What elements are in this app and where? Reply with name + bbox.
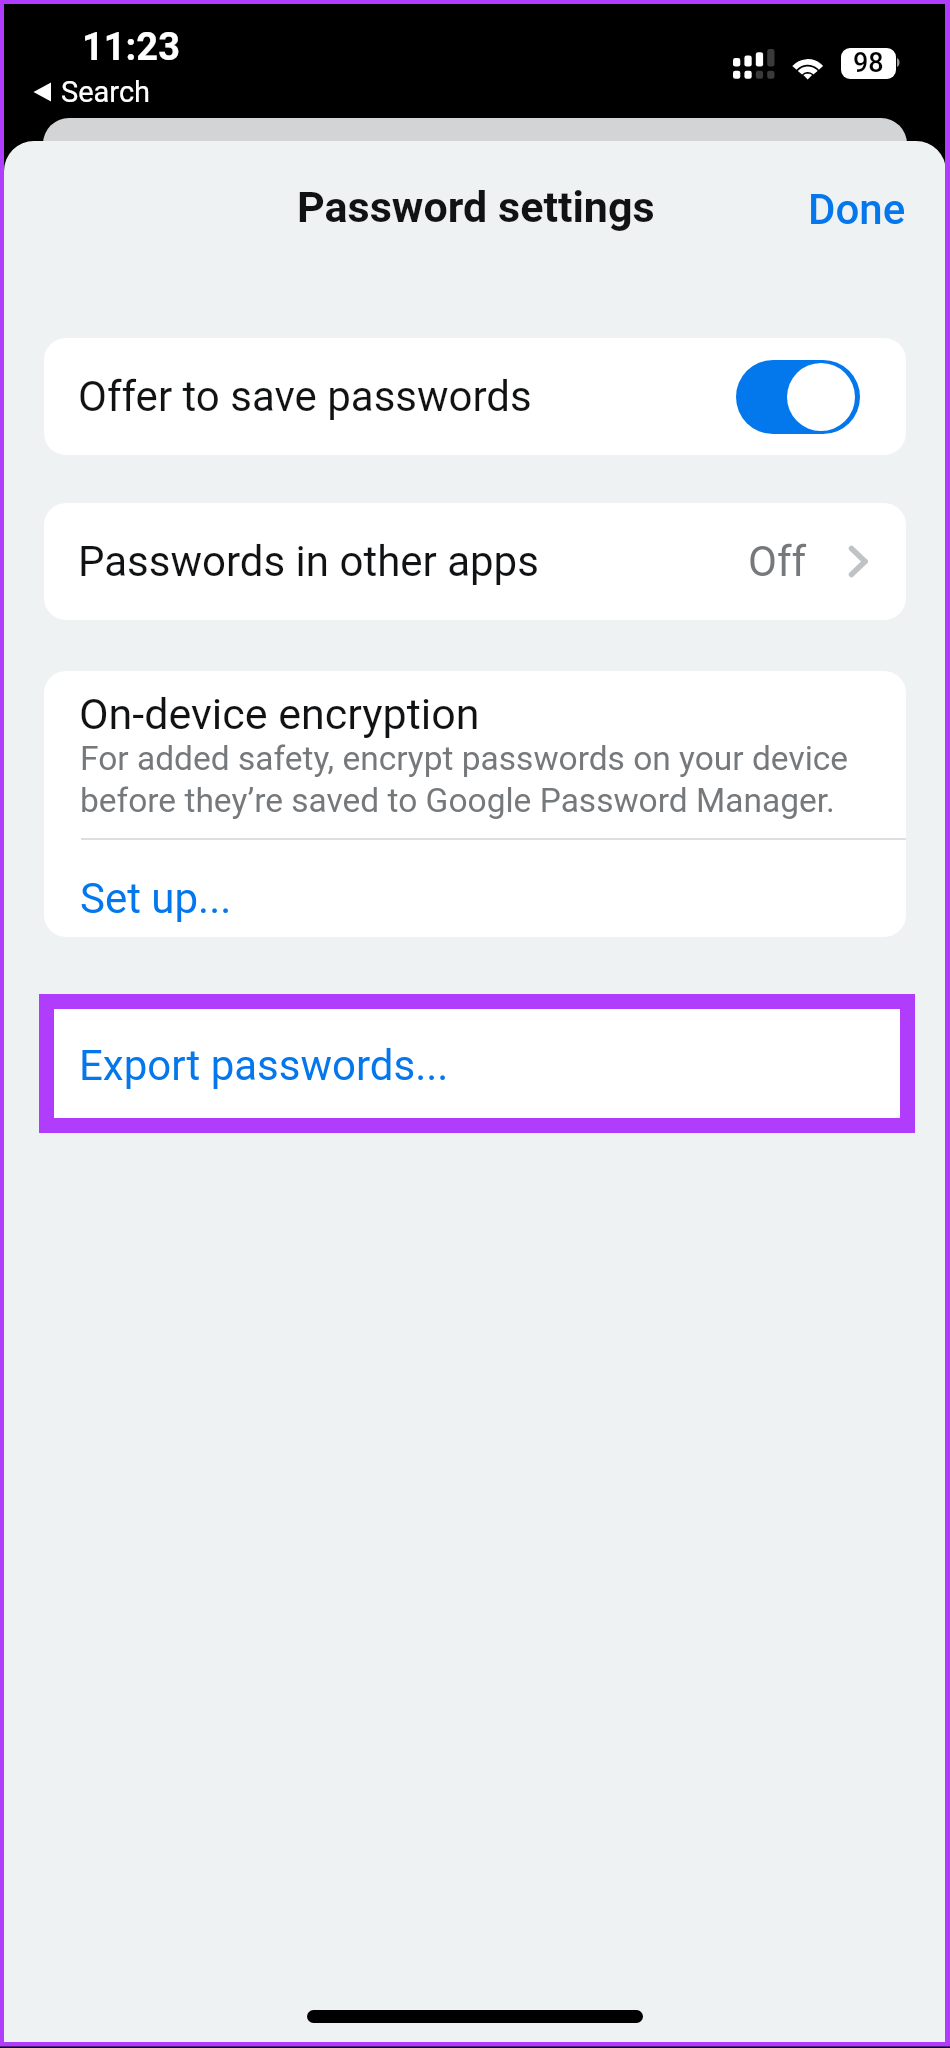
staticText: Password settings [297,182,655,232]
staticText: On-device encryption [79,689,480,739]
button[interactable]: Offer to save passwords [44,338,906,455]
button[interactable]: Set up... [44,840,906,937]
staticText: 98 [853,48,884,78]
staticText: Passwords in other apps [78,537,539,586]
staticText: Export passwords... [79,1041,449,1090]
button[interactable]: Search [33,75,159,109]
staticText: Offer to save passwords [78,372,532,421]
staticText: Off [748,537,807,586]
staticText: Search [61,75,151,109]
staticText: Done [808,185,906,234]
button[interactable]: Done [786,165,928,254]
other: Battery 98 percent [841,47,902,81]
staticText: 11:23 [82,25,180,70]
staticText: Set up... [80,874,232,923]
button[interactable]: Offer to save passwords, on [736,360,860,434]
other: Wi-Fi [788,46,830,80]
staticText: For added safety, encrypt passwords on y… [80,739,849,820]
button[interactable]: Export passwords... [44,1004,906,1121]
button[interactable]: Passwords in other apps [44,503,906,620]
other: Cellular signal [733,47,777,81]
